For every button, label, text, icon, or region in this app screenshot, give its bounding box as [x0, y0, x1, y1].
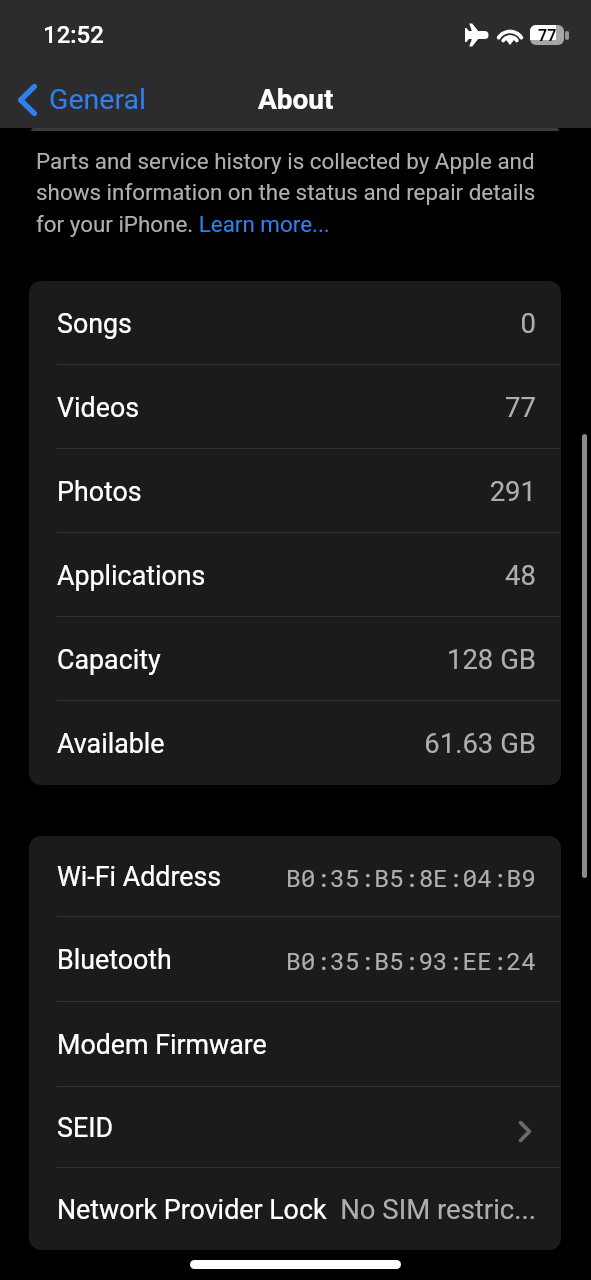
button[interactable]: Applications	[29, 533, 561, 617]
staticText: 61.63 GB	[424, 727, 536, 759]
staticText: Parts and service history is collected b…	[36, 148, 565, 238]
button[interactable]: Photos	[29, 449, 561, 533]
staticText: 77	[505, 391, 536, 423]
other: Wi-Fi	[498, 25, 522, 45]
staticText: Applications	[57, 560, 206, 591]
staticText: About	[258, 83, 334, 116]
staticText: 77	[538, 26, 557, 45]
button[interactable]: Songs	[29, 281, 561, 365]
button[interactable]: Capacity	[29, 617, 561, 701]
button[interactable]: Videos	[29, 365, 561, 449]
staticText: No SIM restric...	[340, 1193, 536, 1225]
staticText: 12:52	[43, 21, 104, 49]
staticText: SEID	[57, 1112, 114, 1143]
button[interactable]: Back to General	[0, 77, 156, 122]
staticText: B0:35:B5:93:EE:24	[286, 944, 536, 976]
staticText: General	[49, 83, 146, 116]
button[interactable]: Modem Firmware	[29, 1002, 561, 1087]
staticText: Modem Firmware	[57, 1029, 267, 1060]
button[interactable]: SEID	[29, 1087, 561, 1168]
staticText: Available	[57, 728, 165, 759]
staticText: Videos	[57, 392, 140, 423]
staticText: Photos	[57, 476, 142, 507]
staticText: Capacity	[57, 644, 161, 675]
staticText: 128 GB	[446, 643, 536, 675]
staticText: Network Provider Lock	[57, 1194, 327, 1225]
other: Airplane mode	[465, 23, 489, 47]
staticText: 48	[505, 559, 536, 591]
staticText: Songs	[57, 308, 132, 339]
button[interactable]: Wi-Fi Address	[29, 836, 561, 917]
staticText: B0:35:B5:8E:04:B9	[286, 861, 536, 893]
button[interactable]: Bluetooth	[29, 917, 561, 1002]
staticText: 0	[520, 307, 536, 339]
staticText: 291	[489, 475, 536, 507]
staticText: Wi-Fi Address	[57, 861, 222, 892]
button[interactable]: Network Provider Lock	[29, 1168, 561, 1250]
button[interactable]: Available	[29, 701, 561, 785]
staticText: Bluetooth	[57, 944, 172, 975]
other: Back to General	[18, 84, 37, 116]
